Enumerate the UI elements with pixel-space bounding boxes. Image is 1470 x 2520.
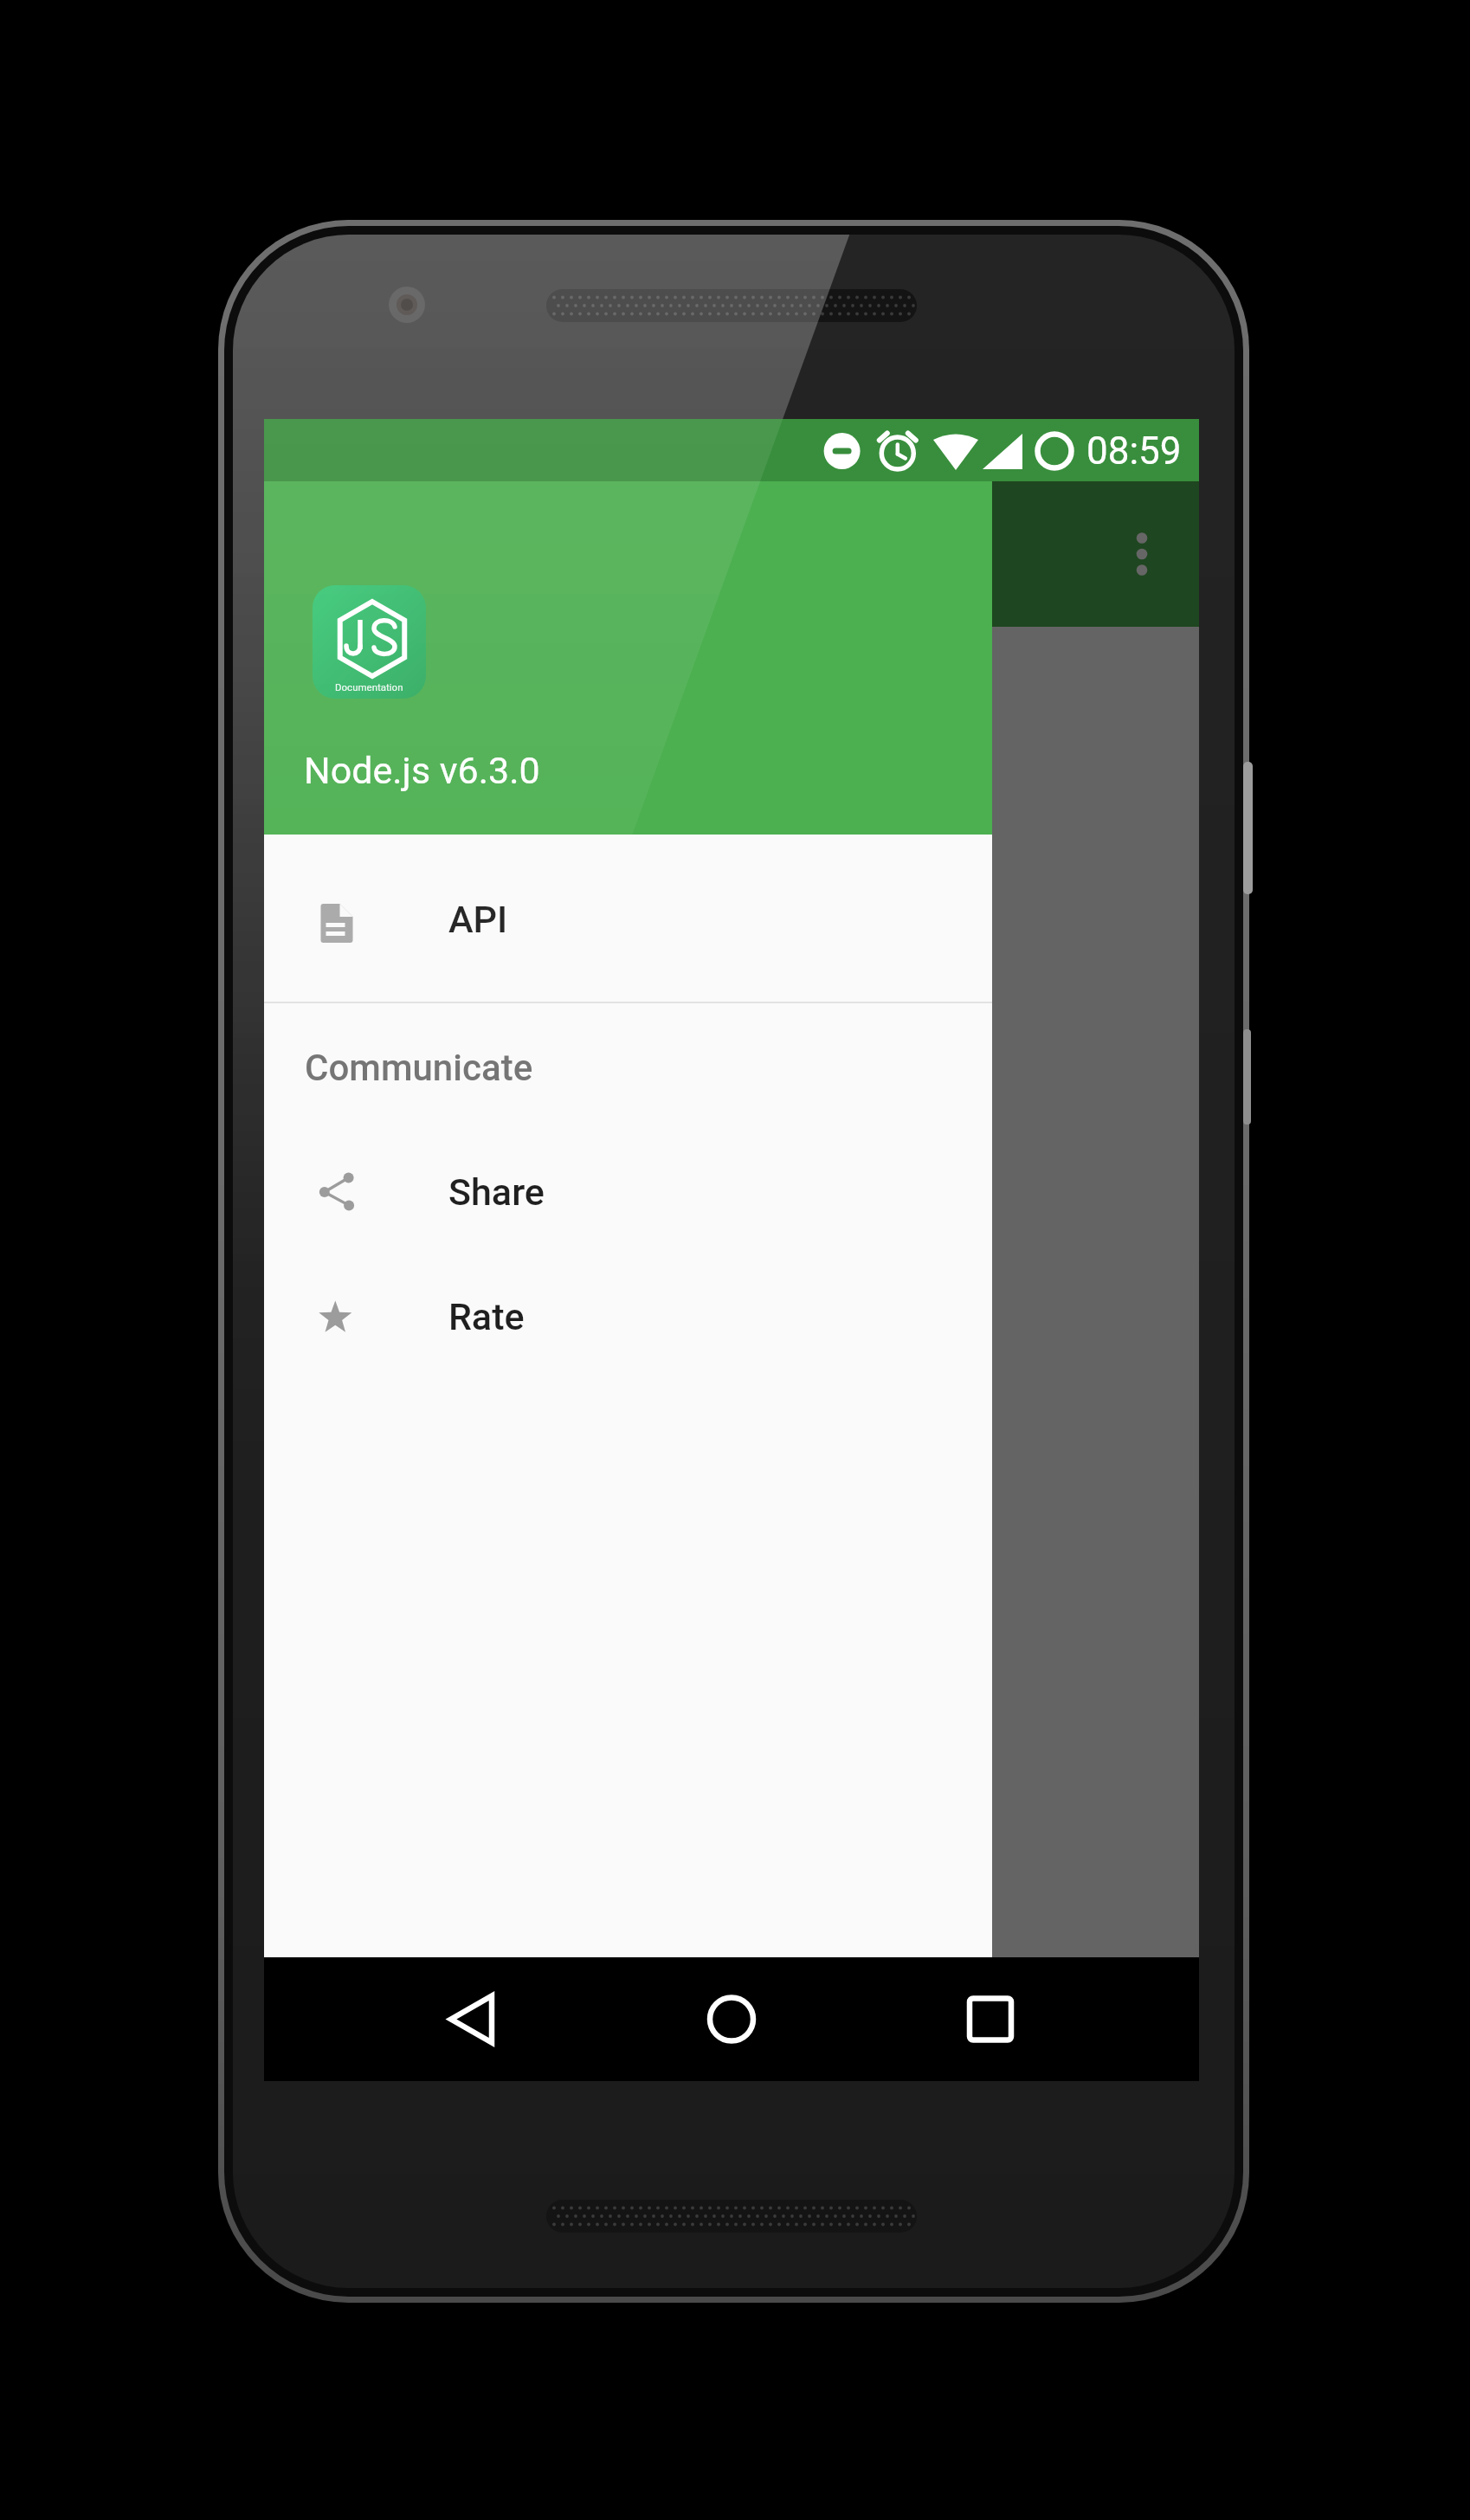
- button[interactable]: Back: [264, 1957, 680, 2081]
- button[interactable]: Recent apps: [783, 1957, 1197, 2081]
- staticText: API: [448, 898, 508, 941]
- staticText: Communicate: [305, 1047, 533, 1089]
- button[interactable]: API: [264, 857, 992, 982]
- staticText: 08:59: [1086, 429, 1182, 474]
- staticText: Documentation: [335, 681, 403, 693]
- button[interactable]: Rate: [264, 1254, 992, 1379]
- button[interactable]: Share: [264, 1130, 992, 1254]
- staticText: Node.js v6.3.0: [304, 749, 540, 792]
- button[interactable]: More options: [1085, 497, 1199, 611]
- button[interactable]: Home: [680, 1957, 783, 2081]
- button[interactable]: Documentation: [264, 481, 992, 835]
- staticText: Share: [448, 1170, 545, 1214]
- staticText: Rate: [448, 1295, 525, 1338]
